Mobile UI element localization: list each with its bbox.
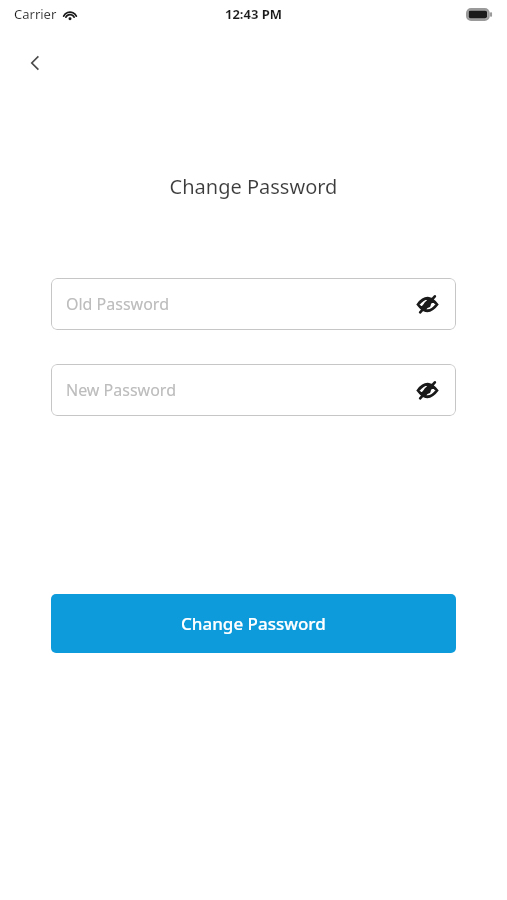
staticText: 12:43 PM — [225, 5, 283, 23]
button[interactable]: Change Password — [51, 594, 456, 653]
staticText: Change Password — [181, 612, 326, 635]
button[interactable]: Old Password — [51, 278, 456, 330]
staticText: Old Password — [66, 293, 169, 315]
button[interactable]: Back — [14, 42, 56, 84]
button[interactable]: Show password — [412, 289, 442, 319]
staticText: Change Password — [0, 173, 507, 200]
staticText: Carrier — [14, 5, 57, 23]
button[interactable]: Show password — [412, 375, 442, 405]
staticText: New Password — [66, 379, 176, 401]
button[interactable]: New Password — [51, 364, 456, 416]
